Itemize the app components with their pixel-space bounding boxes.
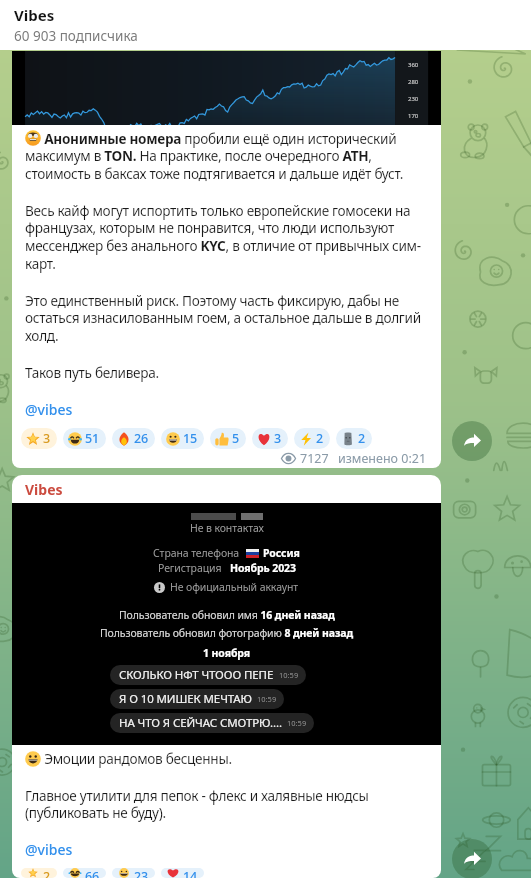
- button[interactable]: 2: [336, 428, 372, 449]
- staticText: 170: [408, 112, 419, 120]
- staticText: @vibes: [25, 840, 73, 859]
- staticText: 3: [43, 430, 50, 447]
- staticText: изменено 0:21: [338, 450, 427, 467]
- staticText: 14: [183, 868, 197, 878]
- staticText: Страна телефона: [153, 546, 240, 560]
- staticText: 280: [408, 78, 419, 86]
- staticText: СКОЛЬКО НФТ ЧТООО ПЕПЕ: [119, 667, 274, 683]
- staticText: 1 ноября: [203, 646, 251, 660]
- staticText: Главное утилити для пепок - флекс и халя…: [25, 786, 427, 822]
- staticText: 26: [134, 430, 148, 447]
- staticText: НА ЧТО Я СЕЙЧАС СМОТРЮ....: [119, 715, 282, 731]
- staticText: 10:59: [287, 718, 307, 728]
- staticText: 23: [134, 868, 148, 878]
- staticText: Ноябрь 2023: [230, 561, 296, 575]
- button[interactable]: 360: [12, 51, 441, 468]
- staticText: 5: [232, 430, 239, 447]
- staticText: 66: [85, 868, 99, 878]
- staticText: 360: [408, 61, 419, 69]
- staticText: 2: [316, 430, 323, 447]
- staticText: @ Анонимные номера пробили ещё один исто…: [25, 129, 427, 183]
- staticText: Пользователь обновил имя 16 дней назад: [119, 608, 335, 622]
- staticText: 10:59: [279, 670, 299, 680]
- button[interactable]: 5: [210, 428, 246, 449]
- staticText: 2: [358, 430, 365, 447]
- button[interactable]: 2: [294, 428, 330, 449]
- button[interactable]: Forward: [452, 421, 492, 461]
- staticText: Пользователь обновил фотографию 8 дней н…: [100, 626, 353, 640]
- staticText: Таков путь беливера.: [25, 363, 159, 382]
- button[interactable]: 66: [63, 868, 106, 878]
- staticText: 60 903 подписчика: [14, 27, 138, 45]
- staticText: 230: [408, 95, 419, 103]
- button[interactable]: 3: [21, 428, 57, 449]
- staticText: Не официальный аккаунт: [170, 580, 299, 594]
- staticText: Я О 10 МИШЕК МЕЧТАЮ: [119, 691, 252, 707]
- staticText: Это единственный риск. Поэтому часть фик…: [25, 291, 427, 345]
- button[interactable]: 26: [112, 428, 155, 449]
- staticText: 7127: [300, 450, 329, 467]
- button[interactable]: 15: [161, 428, 204, 449]
- staticText: 2: [43, 868, 50, 878]
- staticText: Регистрация: [158, 561, 222, 575]
- staticText: @ Эмоции рандомов бесценны.: [25, 749, 232, 768]
- button[interactable]: Forward: [452, 839, 492, 878]
- button[interactable]: 3: [252, 428, 288, 449]
- button[interactable]: Vibes: [12, 475, 441, 878]
- staticText: Не в контактах: [190, 521, 264, 535]
- staticText: Весь кайф могут испортить только европей…: [25, 201, 427, 273]
- staticText: 15: [183, 430, 197, 447]
- button[interactable]: 2: [21, 868, 57, 878]
- staticText: @vibes: [25, 400, 73, 419]
- button[interactable]: 14: [161, 868, 204, 878]
- button[interactable]: 51: [63, 428, 106, 449]
- staticText: 51: [85, 430, 99, 447]
- staticText: 3: [274, 430, 281, 447]
- staticText: Vibes: [25, 480, 63, 499]
- staticText: 10:59: [257, 694, 277, 704]
- staticText: Россия: [263, 546, 300, 560]
- button[interactable]: 23: [112, 868, 155, 878]
- staticText: Vibes: [14, 5, 55, 25]
